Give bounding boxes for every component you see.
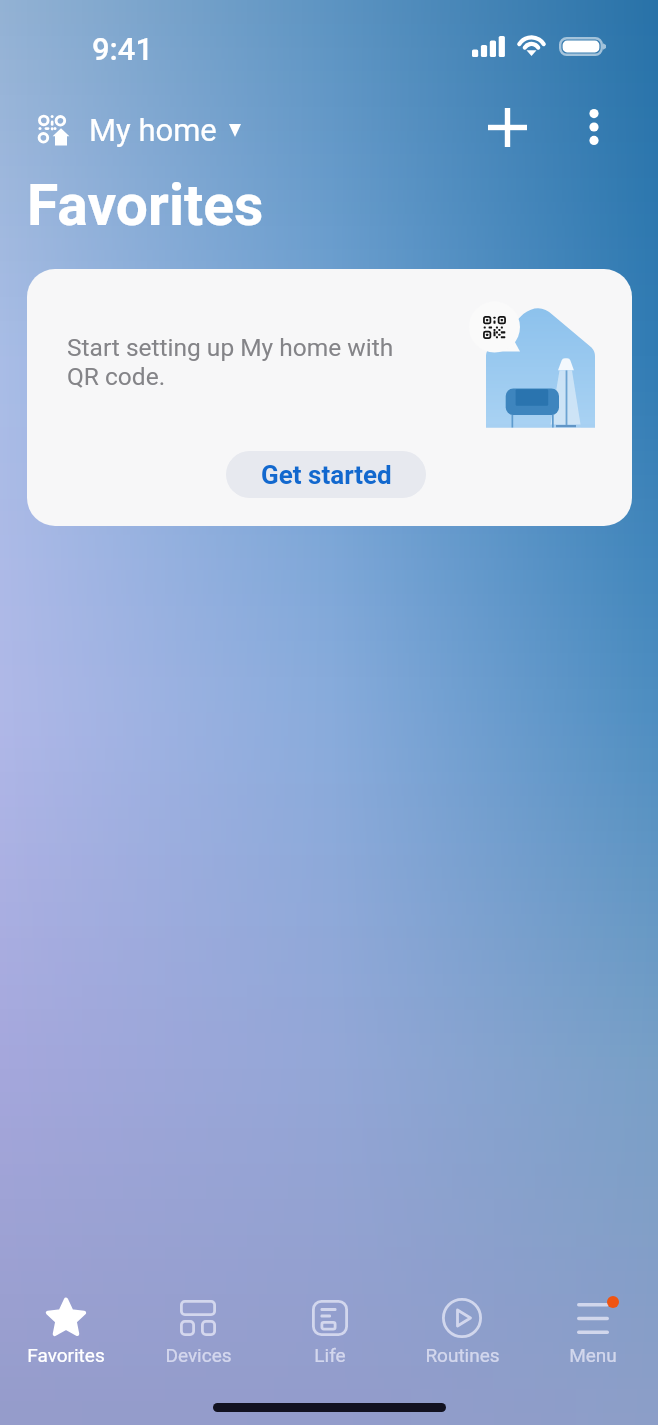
staticText: Favorites: [27, 172, 264, 239]
staticText: Favorites: [27, 1344, 105, 1366]
staticText: Devices: [165, 1344, 232, 1366]
button[interactable]: More options: [558, 91, 630, 163]
button[interactable]: Devices: [132, 1289, 264, 1371]
staticText: Routines: [425, 1344, 500, 1366]
staticText: My home: [89, 112, 217, 148]
staticText: Life: [314, 1344, 346, 1366]
staticText: Menu: [569, 1344, 617, 1366]
staticText: Start setting up My home with QR code.: [67, 333, 394, 391]
button[interactable]: Add device: [471, 91, 543, 163]
staticText: 9:41: [92, 31, 154, 67]
button[interactable]: Favorites: [0, 1289, 132, 1371]
button[interactable]: Menu: [528, 1289, 658, 1371]
button[interactable]: Routines: [396, 1289, 528, 1371]
staticText: Get started: [261, 460, 392, 490]
button[interactable]: Life: [264, 1289, 396, 1371]
button[interactable]: Get started: [226, 451, 426, 498]
button[interactable]: My home: [34, 108, 245, 152]
